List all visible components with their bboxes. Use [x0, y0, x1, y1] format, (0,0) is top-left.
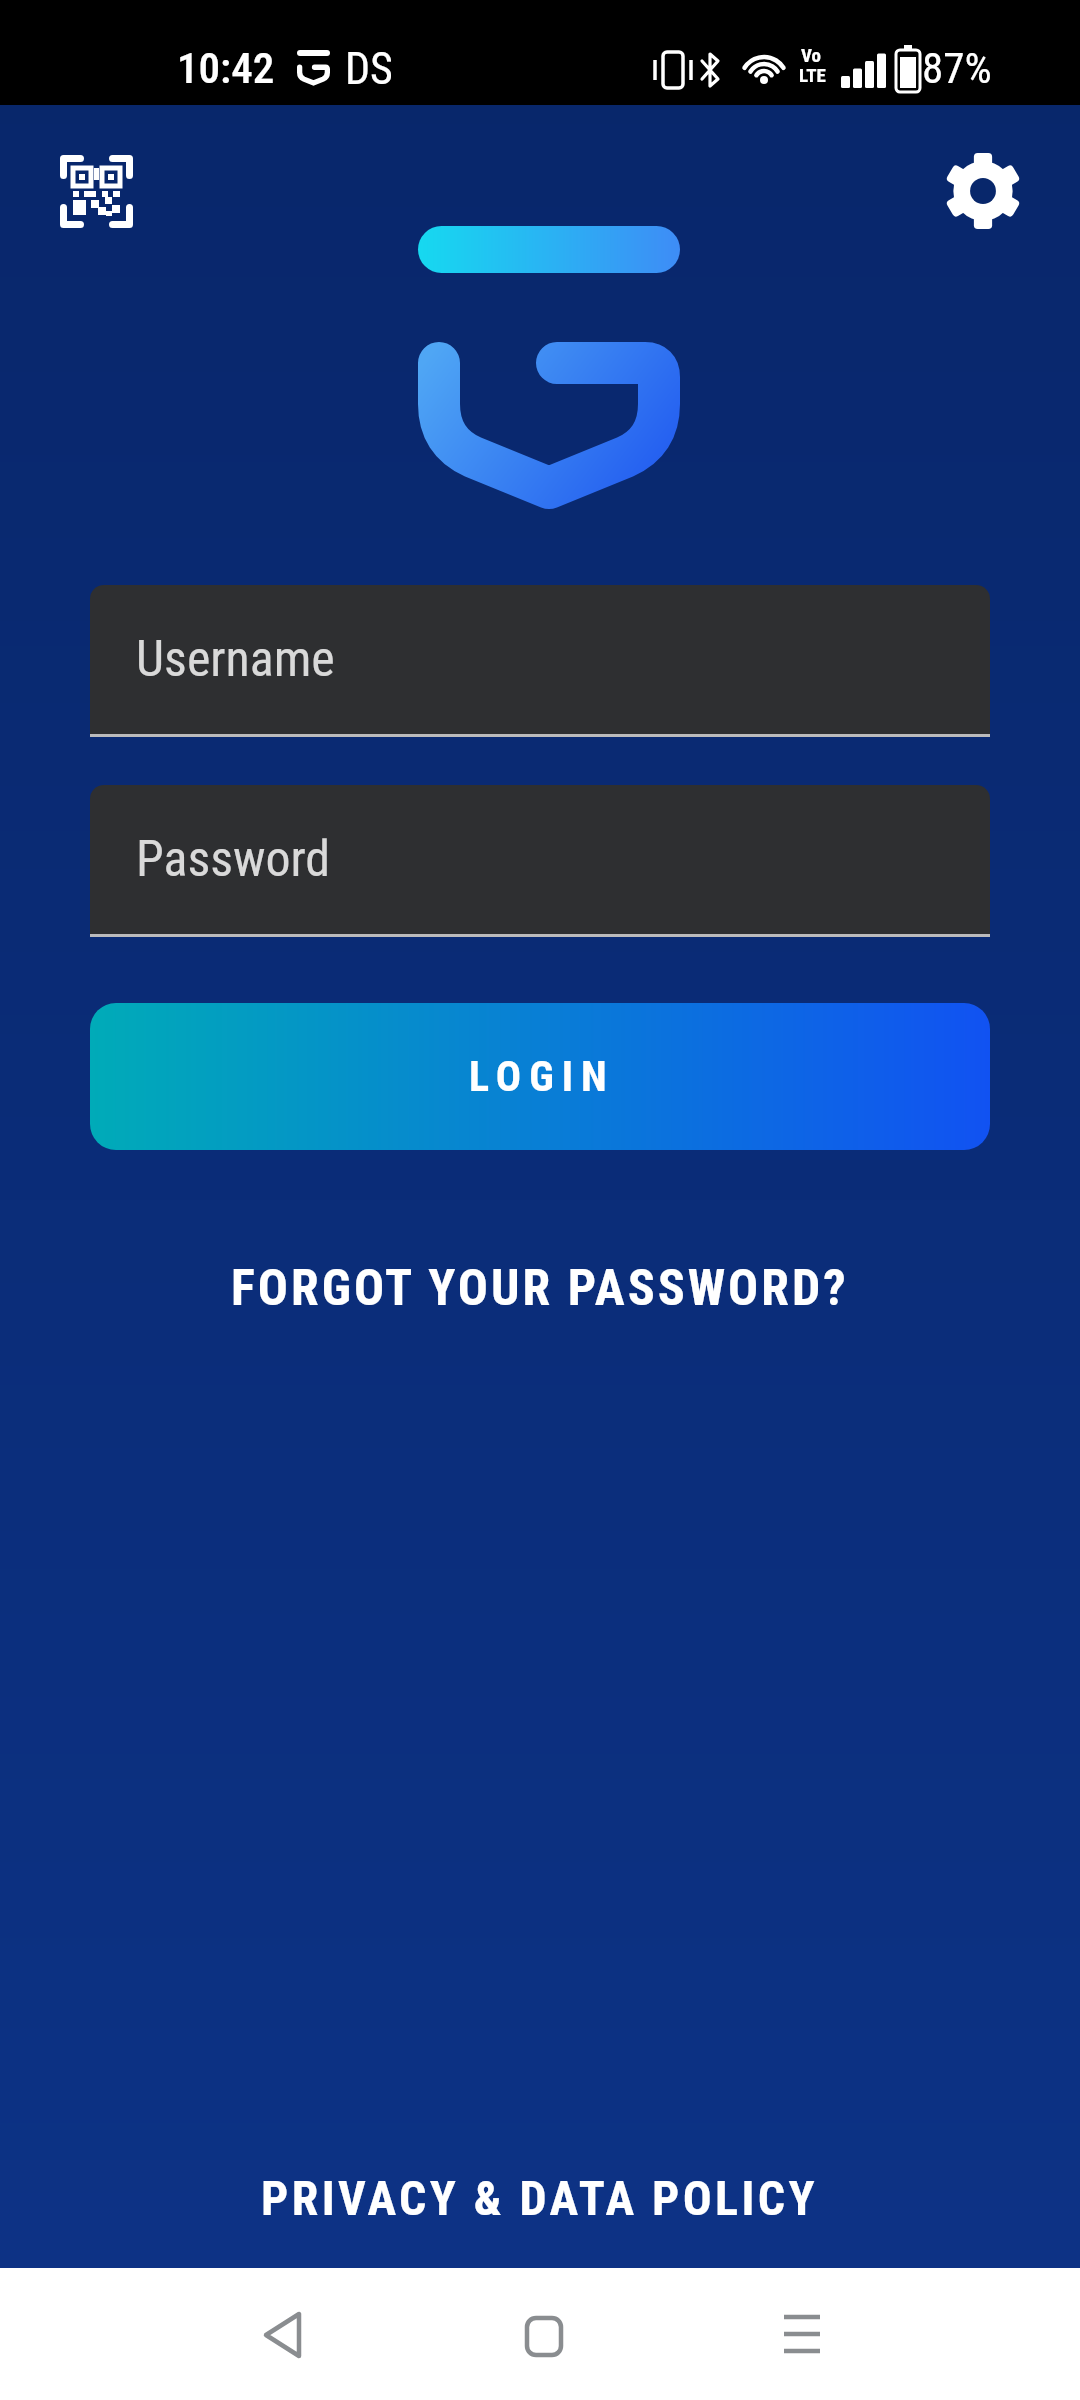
- staticText: Password: [136, 830, 331, 889]
- staticText: LTE: [799, 64, 826, 86]
- button[interactable]: [233, 2285, 333, 2385]
- staticText: Username: [136, 630, 335, 689]
- staticText: PRIVACY & DATA POLICY: [261, 2170, 819, 2226]
- button[interactable]: Username: [90, 585, 990, 734]
- button[interactable]: Password: [90, 785, 990, 934]
- staticText: 87%: [922, 43, 992, 93]
- staticText: LOGIN: [469, 1052, 615, 1101]
- button[interactable]: FORGOT YOUR PASSWORD?: [0, 1252, 1080, 1324]
- button[interactable]: LOGIN: [90, 1003, 990, 1150]
- staticText: DS: [345, 43, 393, 95]
- button[interactable]: [52, 147, 142, 237]
- staticText: Vo: [801, 44, 822, 66]
- staticText: 10:42: [177, 43, 275, 93]
- button[interactable]: [938, 146, 1028, 236]
- staticText: FORGOT YOUR PASSWORD?: [231, 1259, 849, 1318]
- button[interactable]: [494, 2286, 594, 2386]
- button[interactable]: PRIVACY & DATA POLICY: [0, 2162, 1080, 2234]
- button[interactable]: [751, 2284, 851, 2384]
